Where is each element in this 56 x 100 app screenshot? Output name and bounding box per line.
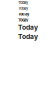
staticText: Today xyxy=(18,12,29,16)
staticText: Today xyxy=(18,17,28,22)
staticText: Today xyxy=(18,23,38,31)
staticText: Today xyxy=(18,6,28,11)
staticText: Today xyxy=(18,0,28,5)
staticText: Today xyxy=(18,32,38,40)
